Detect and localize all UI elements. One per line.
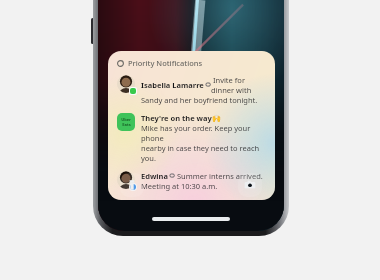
staticText: Invite for dinner with bbox=[211, 75, 266, 95]
staticText: Uber bbox=[121, 117, 131, 122]
staticText: Priority Notifications bbox=[128, 58, 203, 68]
button[interactable]: Priority Notifications bbox=[108, 51, 275, 200]
button[interactable]: Uber bbox=[117, 113, 266, 163]
staticText: Meeting at 10:30 a.m. bbox=[141, 181, 218, 191]
staticText: They're on the way🙌 bbox=[141, 113, 222, 123]
staticText: nearby in case they need to reach you. bbox=[141, 143, 266, 163]
button[interactable]: Flashlight bbox=[120, 173, 144, 197]
staticText: Isabella Lamarre bbox=[141, 80, 204, 90]
staticText: Summer interns arrived. bbox=[175, 171, 263, 181]
button[interactable] bbox=[109, 158, 273, 171]
staticText: Eats bbox=[122, 122, 131, 127]
button[interactable]: Camera bbox=[238, 173, 262, 197]
button[interactable]: Edwina bbox=[117, 171, 266, 191]
staticText: Edwina bbox=[141, 171, 168, 181]
staticText: Sandy and her boyfriend tonight. bbox=[141, 95, 258, 105]
button[interactable]: Isabella Lamarre bbox=[117, 75, 266, 105]
staticText: Mike has your order. Keep your phone bbox=[141, 123, 266, 143]
